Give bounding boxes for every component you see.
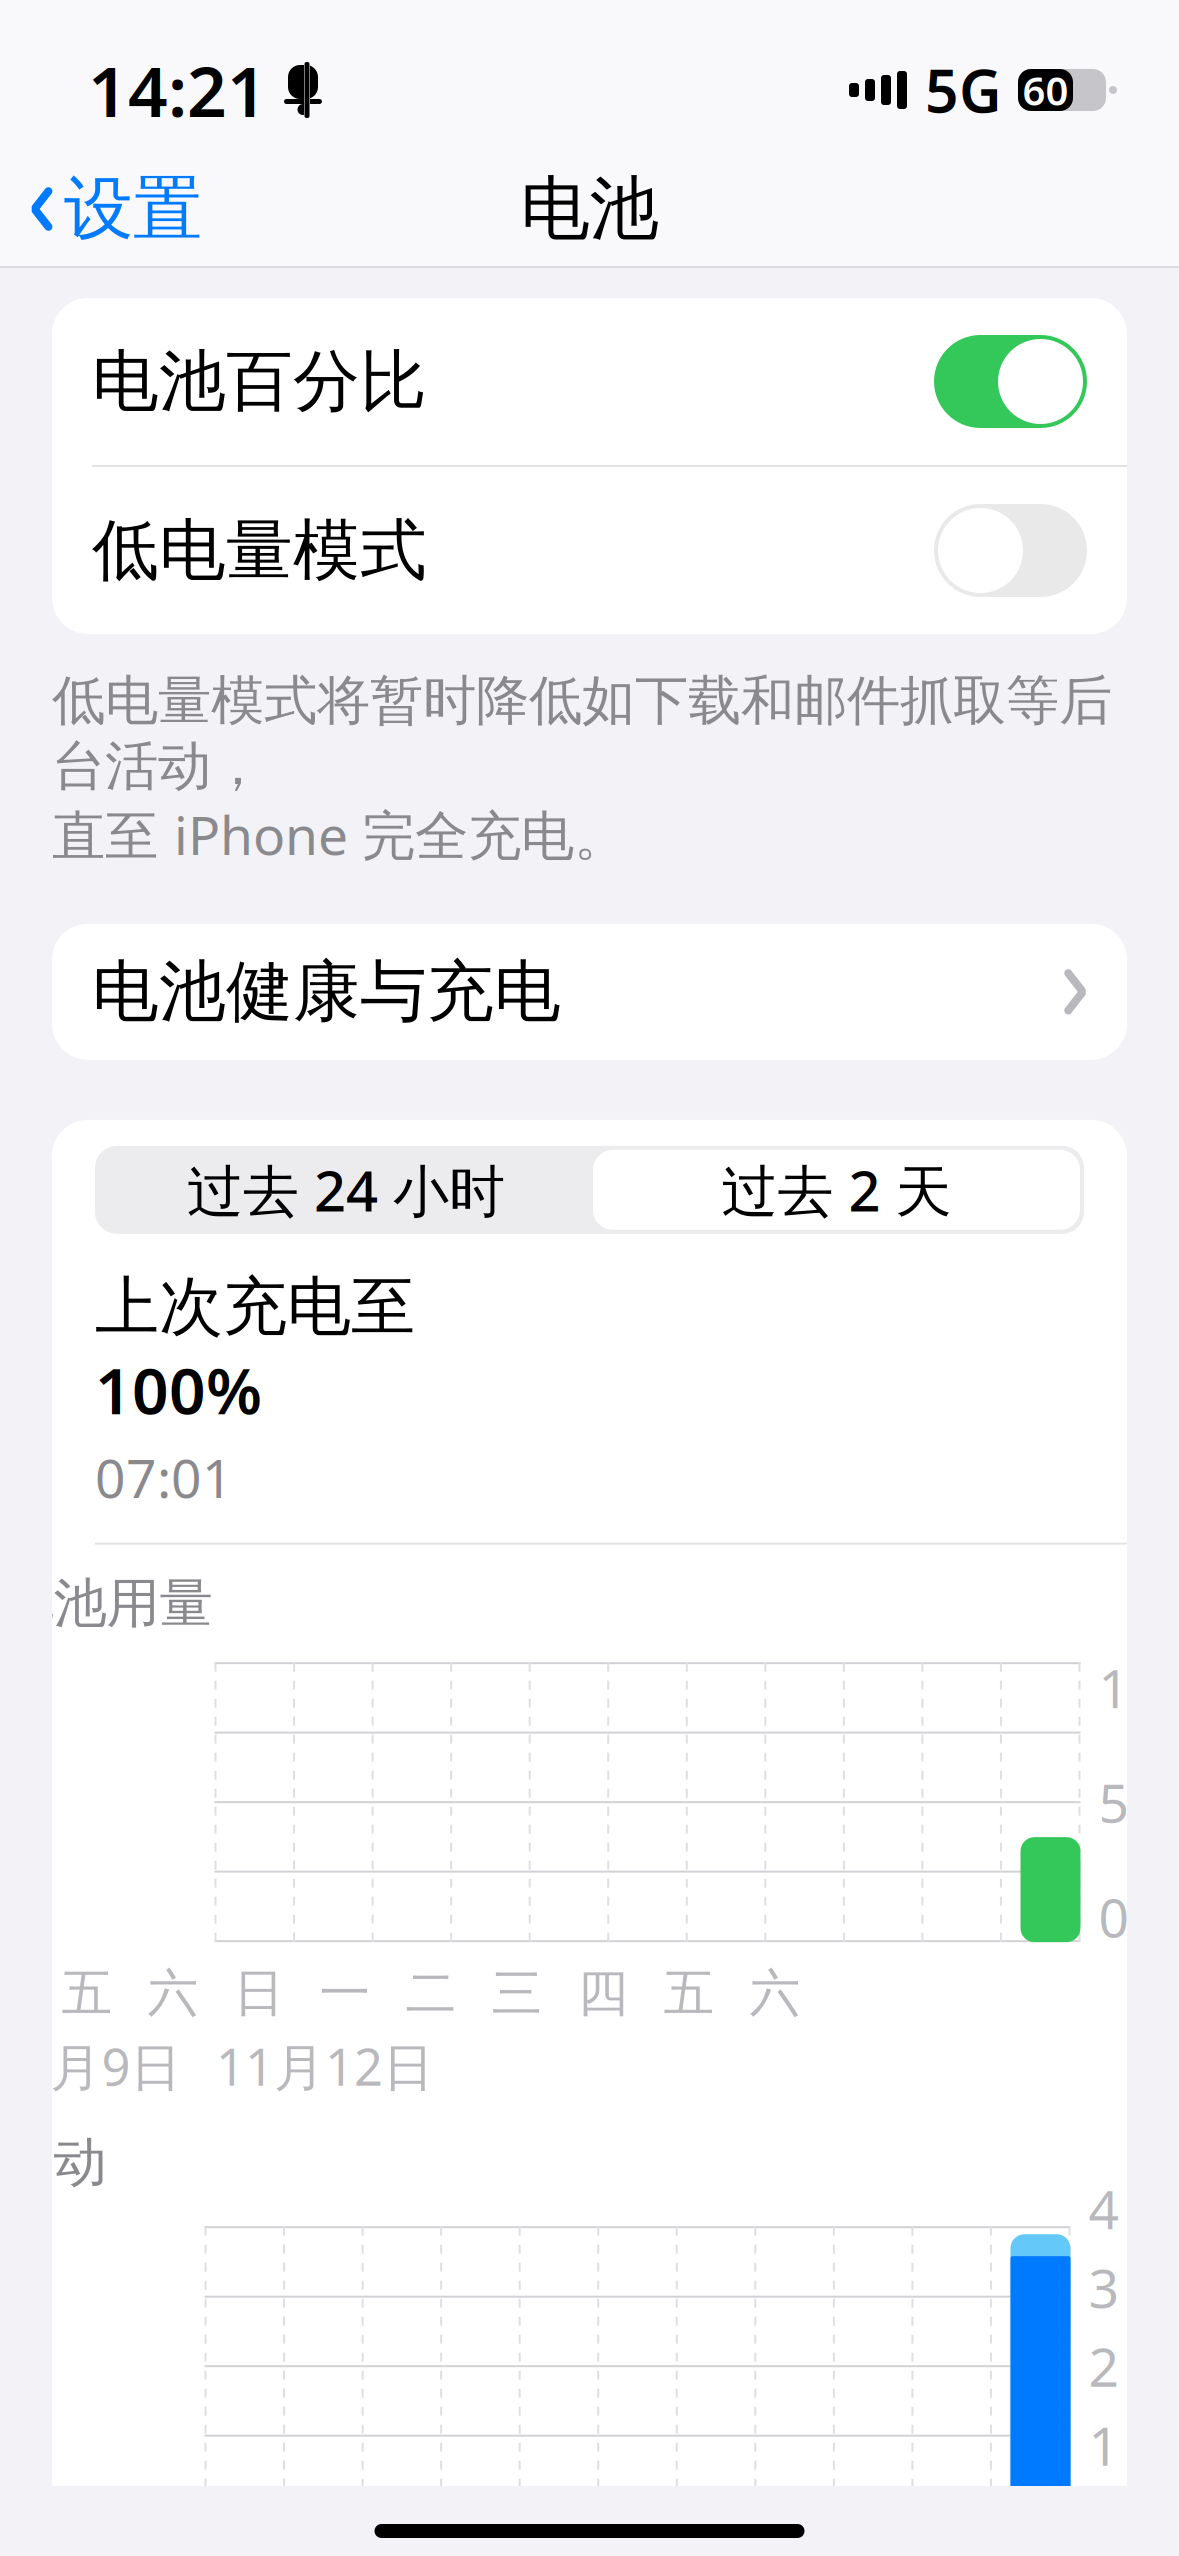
- staticText: 电池百分比: [92, 341, 427, 422]
- staticText: 0%: [1098, 1881, 1173, 1952]
- staticText: 五: [61, 1962, 112, 2024]
- staticText: 一: [319, 1962, 370, 2024]
- staticText: 4 小时: [1088, 2173, 1179, 2244]
- button[interactable]: 电池健康与充电: [52, 924, 1127, 1060]
- button[interactable]: 过去 24 小时: [99, 1146, 593, 1234]
- staticText: 过去 24 小时: [187, 1153, 505, 1227]
- staticText: 1 小时: [1088, 2410, 1179, 2480]
- staticText: 50%: [1098, 1767, 1179, 1837]
- staticText: 上次充电至 100%: [95, 1262, 415, 1432]
- staticText: 5G: [925, 51, 1002, 129]
- staticText: 二: [405, 2531, 456, 2556]
- staticText: 60: [1022, 63, 1068, 116]
- staticText: 过去 2 天: [721, 1153, 951, 1227]
- staticText: 11月12日: [216, 2032, 434, 2100]
- staticText: 2 小时: [1088, 2331, 1179, 2402]
- button[interactable]: 过去 2 天: [593, 1150, 1080, 1230]
- staticText: 14:21: [88, 44, 267, 136]
- button[interactable]: 低电量模式: [52, 467, 1127, 634]
- staticText: 六: [749, 2531, 800, 2556]
- staticText: 六: [147, 1962, 198, 2024]
- staticText: 五: [663, 2531, 714, 2556]
- staticText: 活动: [0, 2130, 106, 2195]
- button[interactable]: 设置: [0, 150, 202, 268]
- staticText: 三: [491, 2531, 542, 2556]
- staticText: 四: [577, 1962, 628, 2024]
- staticText: 三: [491, 1962, 542, 2024]
- staticText: 电池用量: [0, 1571, 212, 1636]
- button[interactable]: 电池百分比: [52, 298, 1127, 465]
- button[interactable]: Off: [934, 504, 1087, 597]
- staticText: 100%: [1098, 1652, 1179, 1723]
- staticText: 六: [749, 1962, 800, 2024]
- staticText: 四: [577, 2531, 628, 2556]
- staticText: 低电量模式: [92, 510, 427, 591]
- staticText: 五: [663, 1962, 714, 2024]
- staticText: 低电量模式将暂时降低如下载和邮件抓取等后台活动， 直至 iPhone 完全充电。: [52, 668, 1112, 870]
- staticText: 11月9日: [0, 2032, 181, 2100]
- button[interactable]: On: [934, 335, 1087, 428]
- staticText: 电池: [520, 166, 658, 252]
- staticText: 日: [233, 1962, 284, 2024]
- staticText: 二: [405, 1962, 456, 2024]
- staticText: 设置: [64, 166, 202, 252]
- staticText: 07:01: [95, 1442, 233, 1513]
- staticText: 电池健康与充电: [92, 951, 561, 1033]
- staticText: 3 小时: [1088, 2252, 1179, 2323]
